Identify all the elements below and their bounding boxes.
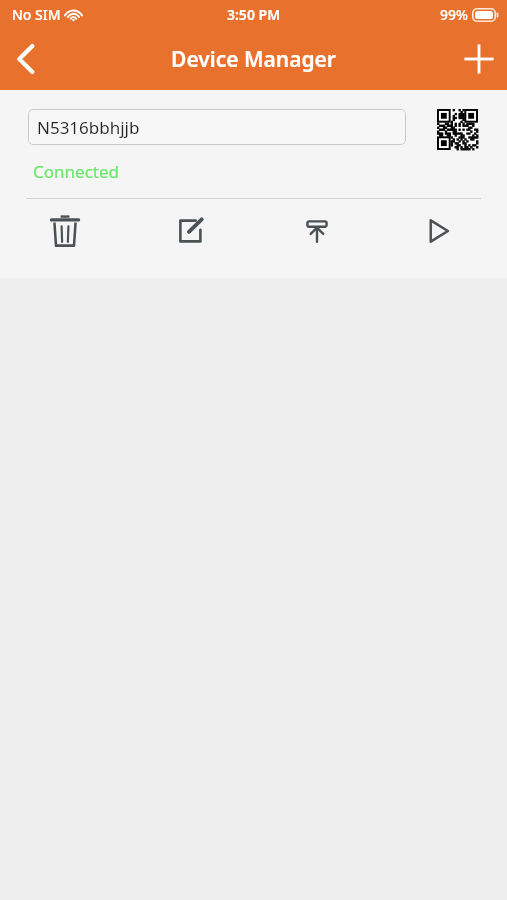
button[interactable]: Upload (254, 199, 380, 263)
button[interactable]: Edit (127, 199, 253, 263)
staticText: 99% (440, 5, 468, 24)
staticText: No SIM (12, 5, 61, 24)
staticText: N5316bbhjjb (37, 116, 140, 139)
button[interactable]: N5316bbhjjb (28, 109, 406, 145)
button[interactable]: Delete (4, 199, 126, 263)
staticText: 3:50 PM (227, 5, 281, 24)
staticText: Device Manager (171, 45, 336, 74)
staticText: Connected (33, 160, 119, 183)
button[interactable]: Add device (451, 31, 507, 87)
button[interactable]: QR code (437, 109, 478, 145)
button[interactable]: Play (381, 199, 507, 263)
button[interactable]: Back (0, 33, 52, 85)
